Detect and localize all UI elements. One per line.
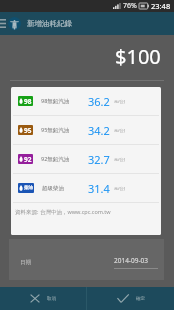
staticText: 98無鉛汽油 — [41, 97, 70, 105]
button[interactable]: 取消 — [0, 287, 86, 310]
staticText: 元/公升 — [114, 128, 125, 133]
staticText: 超級柴油 — [42, 185, 64, 192]
button[interactable]: 確定 — [87, 287, 174, 310]
button[interactable]: Menu — [0, 12, 7, 35]
staticText: 元/公升 — [114, 157, 125, 162]
staticText: 32.7 — [88, 152, 110, 167]
staticText: 資料來源: 台灣中油，www.cpc.com.tw — [15, 208, 111, 216]
staticText: 95 — [24, 126, 32, 135]
button[interactable]: 日期 — [9, 239, 164, 280]
staticText: 2014-09-03 — [114, 256, 148, 265]
staticText: 23:48 — [151, 1, 171, 11]
staticText: 76% — [123, 1, 137, 11]
button[interactable]: 95 — [11, 116, 161, 144]
staticText: 元/公升 — [114, 99, 125, 104]
button[interactable]: $100 — [0, 35, 174, 80]
staticText: 98 — [24, 97, 32, 106]
button[interactable]: 98 — [11, 87, 161, 115]
button[interactable]: 柴油 — [11, 174, 161, 202]
staticText: 31.4 — [88, 181, 110, 196]
staticText: 34.2 — [88, 123, 110, 138]
button[interactable]: Vehicle — [8, 17, 21, 30]
button[interactable]: 92 — [11, 145, 161, 173]
staticText: 92無鉛汽油 — [41, 155, 70, 163]
staticText: 確定 — [136, 296, 145, 302]
staticText: 95無鉛汽油 — [41, 126, 70, 134]
staticText: 36.2 — [88, 94, 110, 109]
staticText: 新增油耗紀錄 — [27, 19, 72, 28]
staticText: 元/公升 — [114, 186, 125, 191]
staticText: $100 — [115, 43, 161, 70]
staticText: 取消 — [47, 296, 56, 302]
staticText: 柴油 — [24, 185, 33, 191]
staticText: 日期 — [20, 259, 31, 266]
staticText: 92 — [24, 155, 32, 164]
